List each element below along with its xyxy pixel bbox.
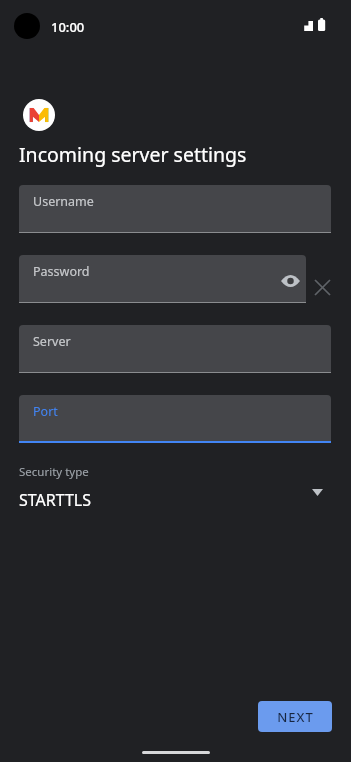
button[interactable]: NEXT: [258, 701, 332, 732]
staticText: NEXT: [277, 708, 314, 726]
button[interactable]: Security type: [19, 463, 331, 513]
staticText: Port: [33, 403, 58, 420]
staticText: STARTTLS: [19, 489, 92, 511]
button[interactable]: Username: [19, 185, 331, 233]
staticText: Password: [33, 263, 90, 280]
staticText: Security type: [19, 464, 89, 480]
button[interactable]: Show password: [278, 269, 302, 293]
button[interactable]: Port: [19, 395, 331, 443]
button[interactable]: Clear password: [307, 272, 337, 302]
staticText: Server: [33, 333, 71, 350]
staticText: 10:00: [51, 18, 85, 36]
staticText: Username: [33, 193, 94, 210]
button[interactable]: Password: [19, 255, 306, 303]
staticText: Incoming server settings: [19, 141, 247, 168]
button[interactable]: Server: [19, 325, 331, 373]
